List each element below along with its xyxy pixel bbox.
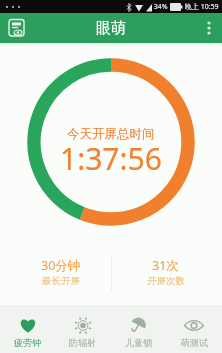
- staticText: 今天开屏总时间: [67, 126, 155, 142]
- staticText: 儿童锁: [125, 337, 152, 348]
- staticText: 眼萌: [96, 19, 126, 38]
- staticText: 最长开屏: [42, 275, 80, 287]
- staticText: 萌测试: [181, 337, 208, 348]
- staticText: 开屏次数: [147, 275, 185, 287]
- staticText: 疲劳钟: [14, 337, 41, 348]
- staticText: 晚上 10:59: [183, 2, 219, 12]
- button[interactable]: 防辐射: [55, 305, 110, 353]
- staticText: 防辐射: [69, 337, 96, 348]
- staticText: 1:37:56: [60, 138, 162, 179]
- button[interactable]: 萌测试: [166, 305, 222, 353]
- button[interactable]: [6, 17, 28, 39]
- button[interactable]: 儿童锁: [110, 305, 166, 353]
- staticText: 30分钟: [41, 257, 81, 274]
- staticText: 34%: [152, 2, 168, 12]
- staticText: 31次: [152, 257, 179, 274]
- button[interactable]: 疲劳钟: [0, 305, 55, 353]
- button[interactable]: [200, 19, 218, 37]
